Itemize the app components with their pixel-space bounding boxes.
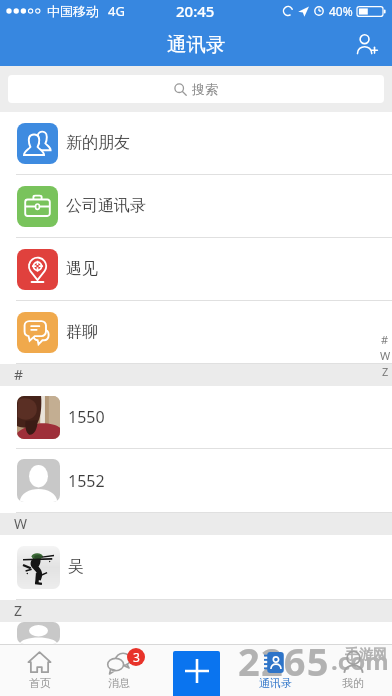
staticText: 首页 — [29, 676, 51, 690]
staticText: 群聊 — [66, 322, 98, 342]
staticText: 通讯录 — [167, 32, 226, 57]
staticText: # — [381, 332, 389, 347]
staticText: 公司通讯录 — [66, 196, 146, 216]
staticText: 搜索 — [192, 81, 218, 97]
staticText: 20:45 — [176, 1, 215, 21]
staticText: 新的朋友 — [66, 133, 130, 153]
button[interactable]: 吴 — [0, 535, 392, 600]
staticText: Z — [382, 364, 389, 379]
staticText: 遇见 — [66, 259, 98, 279]
button[interactable]: 搜索 — [8, 75, 384, 103]
button[interactable]: 首页 — [0, 644, 79, 696]
button[interactable]: 我的 — [314, 644, 392, 696]
button[interactable]: 公司通讯录 — [0, 175, 392, 238]
staticText: 2265 — [238, 635, 330, 687]
staticText: Z — [14, 601, 23, 620]
button[interactable]: Add — [173, 651, 220, 696]
staticText: 4G — [108, 2, 125, 20]
button[interactable]: 通讯录 — [236, 644, 314, 696]
staticText: 1552 — [68, 470, 105, 492]
button[interactable]: 1552 — [0, 449, 392, 513]
staticText: 40% — [329, 3, 353, 19]
staticText: 手游网 — [345, 646, 387, 664]
staticText: # — [14, 365, 24, 384]
staticText: W — [380, 348, 391, 363]
staticText: 吴 — [68, 557, 84, 577]
button[interactable]: 新的朋友 — [0, 112, 392, 175]
staticText: 我的 — [342, 676, 364, 690]
button[interactable]: 遇见 — [0, 238, 392, 301]
button[interactable]: 3 — [79, 644, 158, 696]
staticText: W — [14, 514, 28, 533]
staticText: 消息 — [108, 676, 130, 690]
staticText: 通讯录 — [259, 676, 292, 690]
button[interactable]: 群聊 — [0, 301, 392, 364]
button[interactable]: Add contact — [346, 24, 386, 64]
staticText: 1550 — [68, 406, 105, 428]
button[interactable]: 1550 — [0, 386, 392, 449]
staticText: 3 — [133, 649, 140, 665]
staticText: 中国移动 — [47, 3, 99, 19]
staticText: .com — [331, 644, 389, 677]
button[interactable] — [0, 622, 392, 644]
